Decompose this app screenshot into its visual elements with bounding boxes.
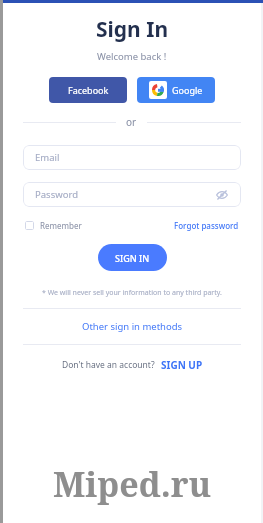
staticText: Welcome back !	[97, 50, 167, 63]
staticText: Miped.ru	[53, 461, 212, 507]
button[interactable]: Facebook	[49, 77, 127, 103]
button[interactable]: Forgot password	[174, 220, 239, 231]
button[interactable]: Email	[23, 145, 241, 170]
staticText: or	[126, 115, 137, 129]
button[interactable]: SIGN UP	[161, 358, 203, 372]
staticText: SIGN IN	[115, 252, 150, 264]
staticText: Email	[35, 151, 60, 164]
button[interactable]: Password	[23, 182, 241, 207]
staticText: Sign In	[96, 15, 169, 44]
button[interactable]: Google	[137, 77, 215, 103]
button[interactable]: Other sign in methods	[82, 320, 183, 333]
button[interactable]: Remember	[25, 220, 82, 231]
staticText: * We will never sell your information to…	[42, 288, 222, 298]
staticText: Google	[172, 84, 203, 96]
button[interactable]: SIGN IN	[98, 244, 167, 271]
staticText: Forgot password	[174, 220, 239, 231]
staticText: Remember	[40, 220, 82, 231]
staticText: Password	[35, 188, 78, 201]
staticText: Facebook	[68, 84, 109, 96]
button[interactable]: Show password	[215, 188, 229, 202]
staticText: Other sign in methods	[82, 320, 183, 333]
staticText: Don't have an account?	[62, 359, 155, 371]
staticText: SIGN UP	[161, 358, 203, 372]
